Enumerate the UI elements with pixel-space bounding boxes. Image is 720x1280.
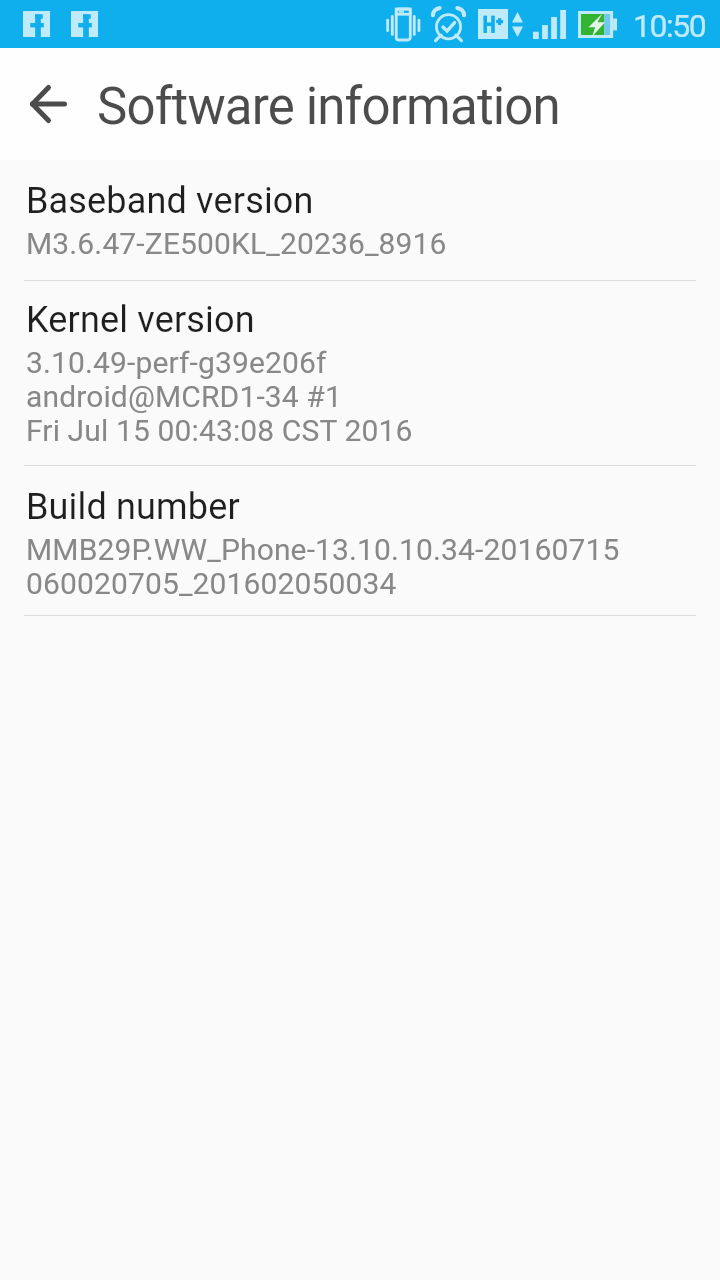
staticText: Software information xyxy=(97,77,560,137)
staticText: Baseband version xyxy=(26,180,314,222)
staticText: Kernel version xyxy=(26,299,255,341)
button[interactable]: Build number xyxy=(0,466,720,615)
button[interactable]: Baseband version xyxy=(0,160,720,280)
staticText: Build number xyxy=(26,486,240,528)
staticText: 3.10.49-perf-g39e206f android@MCRD1-34 #… xyxy=(26,345,413,447)
button[interactable]: Kernel version xyxy=(0,281,720,465)
staticText: MMB29P.WW_Phone-13.10.10.34-20160715 060… xyxy=(26,532,620,600)
button[interactable]: Navigate up xyxy=(10,60,86,148)
staticText: M3.6.47-ZE500KL_20236_8916 xyxy=(26,226,447,260)
staticText: 10:50 xyxy=(633,7,706,45)
